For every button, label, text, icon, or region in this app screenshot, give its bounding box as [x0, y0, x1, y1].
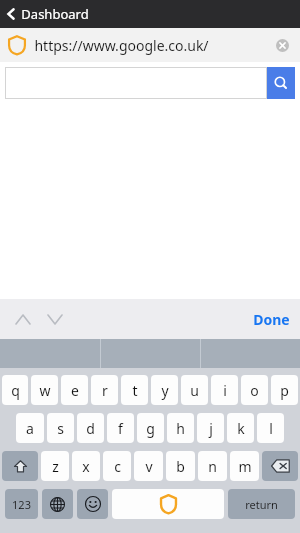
button[interactable]: return [228, 489, 295, 519]
button[interactable]: j [197, 413, 224, 443]
button[interactable]: y [151, 375, 178, 405]
button[interactable]: https://www.google.co.uk/ [0, 28, 300, 62]
staticText: m [238, 457, 252, 476]
button[interactable]: Previous field [8, 304, 38, 334]
staticText: p [280, 381, 289, 400]
staticText: Done [253, 310, 290, 329]
staticText: o [250, 381, 259, 400]
button[interactable]: Change keyboard language [42, 489, 73, 519]
button[interactable]: w [31, 375, 58, 405]
staticText: j [209, 419, 213, 438]
button[interactable]: t [121, 375, 148, 405]
staticText: r [102, 381, 108, 400]
staticText: i [223, 381, 227, 400]
button[interactable]: k [227, 413, 254, 443]
button[interactable]: h [167, 413, 194, 443]
button[interactable]: Done [243, 304, 300, 335]
staticText: q [11, 381, 20, 400]
button[interactable]: d [77, 413, 104, 443]
button[interactable]: s [47, 413, 74, 443]
button[interactable]: q [2, 375, 28, 405]
staticText: t [132, 381, 138, 400]
button[interactable]: 123 [5, 489, 38, 519]
staticText: Dashboard [21, 5, 89, 23]
staticText: n [208, 457, 217, 476]
staticText: x [82, 457, 90, 476]
staticText: v [145, 457, 153, 476]
staticText: w [39, 381, 51, 400]
staticText: k [237, 419, 245, 438]
button[interactable]: Shift [2, 451, 38, 481]
staticText: d [86, 419, 95, 438]
button[interactable]: a [16, 413, 44, 443]
button[interactable]: p [271, 375, 298, 405]
staticText: s [57, 419, 64, 438]
staticText: return [245, 497, 278, 512]
button[interactable]: Emoji [77, 489, 108, 519]
button[interactable]: r [91, 375, 118, 405]
button[interactable]: o [241, 375, 268, 405]
button[interactable]: x [72, 451, 100, 481]
staticText: 123 [12, 497, 31, 512]
staticText: f [118, 419, 123, 438]
staticText: a [26, 419, 34, 438]
staticText: g [146, 419, 155, 438]
button[interactable]: Space [112, 489, 224, 519]
button[interactable]: b [166, 451, 195, 481]
staticText: https://www.google.co.uk/ [34, 36, 209, 55]
staticText: c [114, 457, 121, 476]
staticText: e [71, 381, 79, 400]
staticText: l [269, 419, 273, 438]
button[interactable]: Search [267, 67, 295, 99]
staticText: u [190, 381, 199, 400]
button[interactable]: u [181, 375, 208, 405]
button[interactable]: m [230, 451, 259, 481]
staticText: y [161, 381, 169, 400]
button[interactable]: z [41, 451, 69, 481]
button[interactable]: c [103, 451, 131, 481]
button[interactable]: f [107, 413, 134, 443]
button[interactable]: l [257, 413, 284, 443]
staticText: b [176, 457, 185, 476]
button[interactable]: e [61, 375, 88, 405]
button[interactable] [5, 67, 267, 99]
staticText: z [52, 457, 59, 476]
button[interactable]: Backspace [262, 451, 298, 481]
button[interactable]: n [198, 451, 227, 481]
staticText: h [176, 419, 185, 438]
button[interactable]: g [137, 413, 164, 443]
button[interactable]: v [134, 451, 163, 481]
button[interactable]: Dashboard [0, 2, 97, 26]
button[interactable]: i [211, 375, 238, 405]
button[interactable]: Next field [40, 304, 70, 334]
button[interactable]: Clear address [272, 35, 292, 55]
